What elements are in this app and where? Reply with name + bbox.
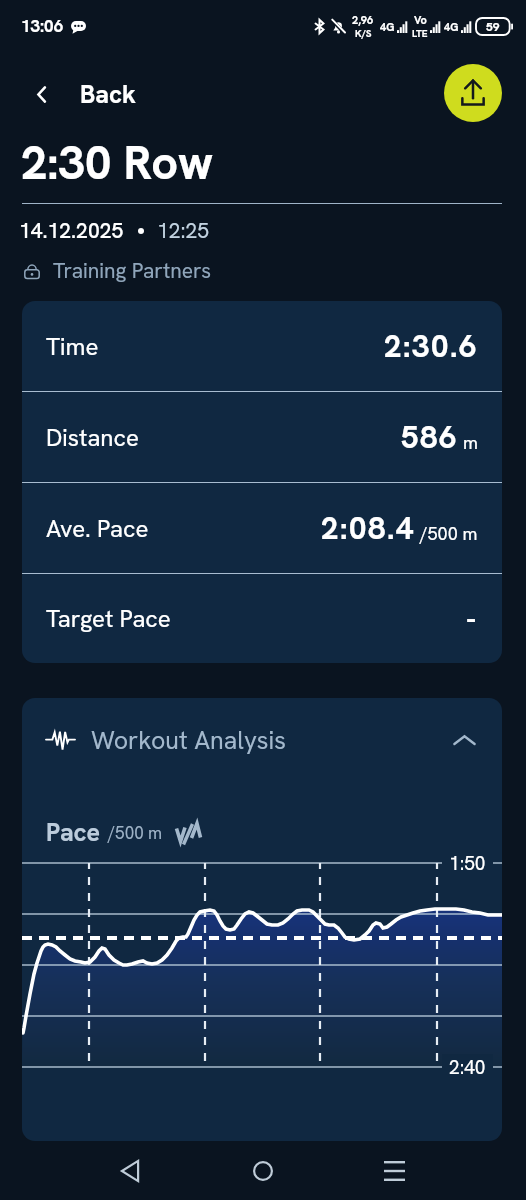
staticText: 586 xyxy=(401,417,458,457)
staticText: Time xyxy=(46,331,99,362)
staticText: - xyxy=(466,599,478,639)
staticText: 13:06 xyxy=(21,15,64,37)
staticText: 2:30 Row xyxy=(21,132,214,193)
staticText: K/S xyxy=(355,27,372,40)
staticText: 1:50 xyxy=(449,851,486,876)
staticText: Target Pace xyxy=(46,603,171,634)
button[interactable]: Time xyxy=(22,301,502,391)
staticText: 2,96 xyxy=(352,13,374,27)
staticText: LTE xyxy=(412,27,428,40)
button[interactable]: Collapse workout analysis xyxy=(450,726,478,754)
button[interactable]: Back xyxy=(29,72,144,117)
staticText: 59 xyxy=(486,19,500,35)
button[interactable]: Workout Analysis xyxy=(22,698,502,782)
staticText: Ave. Pace xyxy=(46,513,149,544)
button[interactable]: Back xyxy=(102,1143,158,1199)
button[interactable]: Target Pace xyxy=(22,574,502,663)
staticText: Training Partners xyxy=(53,257,212,284)
staticText: 4G xyxy=(380,20,395,34)
button[interactable]: Home xyxy=(235,1143,291,1199)
staticText: m xyxy=(463,431,478,454)
staticText: /500 m xyxy=(108,822,163,844)
staticText: Pace xyxy=(46,816,101,849)
staticText: Vo xyxy=(414,13,427,27)
staticText: Back xyxy=(80,78,136,111)
staticText: /500 m xyxy=(420,522,478,545)
button[interactable]: Share workout xyxy=(444,64,502,122)
staticText: 2:40 xyxy=(449,1055,486,1080)
staticText: 2:08.4 xyxy=(321,508,415,548)
staticText: Distance xyxy=(46,422,139,453)
button[interactable]: Ave. Pace xyxy=(22,483,502,573)
staticText: 4G xyxy=(444,20,459,34)
button[interactable]: Distance xyxy=(22,392,502,482)
staticText: 14.12.2025 xyxy=(19,217,124,244)
button[interactable]: Recent apps xyxy=(366,1143,422,1199)
staticText: 12:25 xyxy=(157,217,210,244)
staticText: 2:30.6 xyxy=(384,326,478,366)
staticText: Workout Analysis xyxy=(91,724,286,757)
